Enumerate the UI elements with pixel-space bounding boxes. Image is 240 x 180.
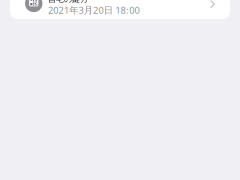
staticText: 2021年3月20日 18:00 [48, 4, 139, 16]
button[interactable]: 自宅の鍵カ [10, 0, 230, 16]
staticText: 自宅の鍵カ [48, 0, 88, 4]
